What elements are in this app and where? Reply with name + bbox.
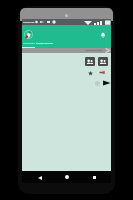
button[interactable]: Contacts [85, 57, 95, 66]
staticText: Chat Bubbles [23, 42, 35, 45]
button[interactable]: Notifications [99, 31, 107, 39]
button[interactable]: Contacts Messages [35, 41, 54, 48]
button[interactable]: Recents [87, 171, 101, 183]
staticText: Contacts Messages [36, 42, 54, 45]
button[interactable]: Profile [24, 30, 33, 39]
button[interactable]: Chat Bubbles [22, 41, 35, 48]
button[interactable]: Back [33, 172, 47, 184]
button[interactable]: Play [102, 80, 111, 86]
button[interactable]: Sound [99, 70, 105, 75]
button[interactable]: Favourite [88, 71, 93, 76]
button[interactable]: New conversation [85, 48, 110, 53]
staticText: New conversation [85, 49, 103, 52]
button[interactable]: Home [60, 171, 74, 183]
staticText: Messenger [23, 21, 35, 24]
button[interactable]: Contacts [98, 57, 108, 66]
